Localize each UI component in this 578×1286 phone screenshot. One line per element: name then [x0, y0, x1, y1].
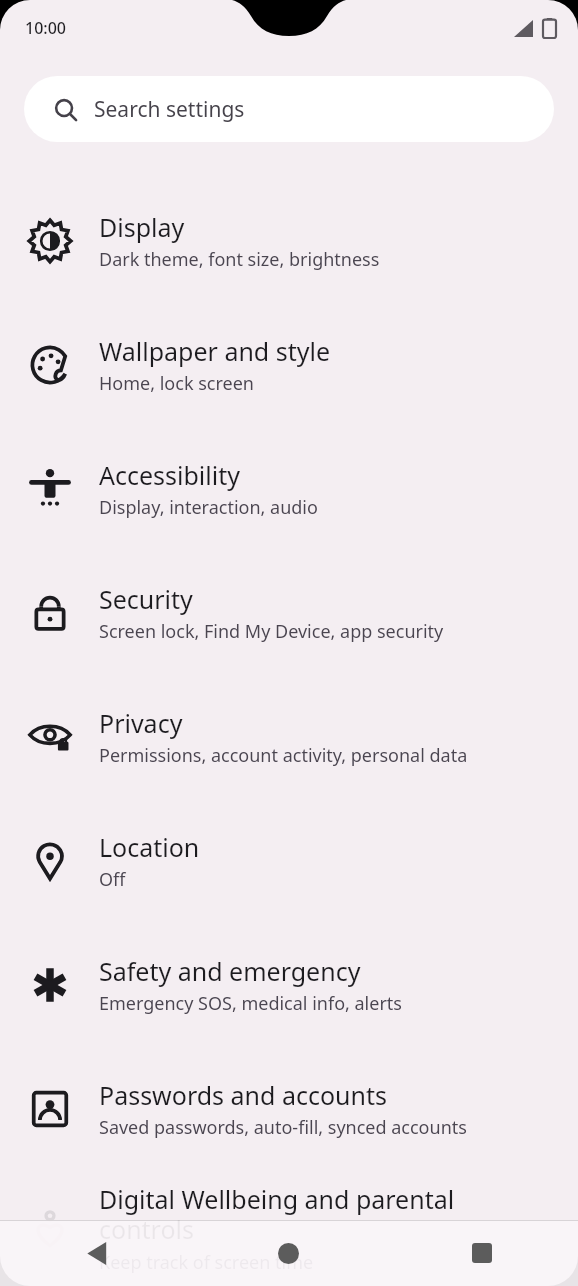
button[interactable]: Privacy	[0, 675, 578, 799]
button[interactable]: Security	[0, 551, 578, 675]
staticText: Privacy	[99, 706, 183, 740]
button[interactable]: Recents	[385, 1220, 578, 1286]
staticText: Security	[99, 582, 193, 616]
button[interactable]: Wallpaper and style	[0, 303, 578, 427]
staticText: Accessibility	[99, 458, 240, 492]
button[interactable]: Location	[0, 799, 578, 923]
staticText: Permissions, account activity, personal …	[99, 743, 468, 768]
staticText: Keep track of screen time	[99, 1250, 314, 1275]
button[interactable]: Safety and emergency	[0, 923, 578, 1047]
staticText: Passwords and accounts	[99, 1078, 387, 1112]
button[interactable]: Search settings	[24, 76, 554, 142]
staticText: Off	[99, 867, 126, 892]
staticText: Emergency SOS, medical info, alerts	[99, 991, 402, 1016]
button[interactable]: Back	[0, 1220, 192, 1286]
staticText: Display, interaction, audio	[99, 495, 318, 520]
staticText: 10:00	[25, 17, 66, 39]
staticText: Safety and emergency	[99, 954, 361, 988]
staticText: Home, lock screen	[99, 371, 254, 396]
staticText: Dark theme, font size, brightness	[99, 247, 380, 272]
button[interactable]: Display	[0, 179, 578, 303]
staticText: Location	[99, 830, 200, 864]
staticText: Display	[99, 210, 185, 244]
staticText: Screen lock, Find My Device, app securit…	[99, 619, 444, 644]
staticText: Saved passwords, auto-fill, synced accou…	[99, 1115, 467, 1140]
staticText: Digital Wellbeing and parental controls	[99, 1182, 550, 1247]
button[interactable]: Digital Wellbeing and parental controls	[0, 1171, 578, 1286]
button[interactable]: Home	[192, 1220, 385, 1286]
button[interactable]: Passwords and accounts	[0, 1047, 578, 1171]
staticText: Search settings	[94, 95, 245, 124]
button[interactable]: Accessibility	[0, 427, 578, 551]
staticText: Wallpaper and style	[99, 334, 331, 368]
